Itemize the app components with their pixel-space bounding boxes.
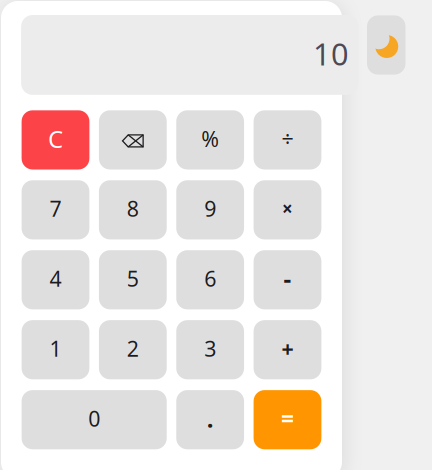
staticText: 2 (127, 334, 139, 363)
staticText: × (282, 196, 293, 221)
button[interactable]: 8 (99, 180, 167, 239)
button[interactable]: 1 (22, 320, 89, 379)
button[interactable]: . (176, 390, 244, 449)
button[interactable]: 2 (99, 320, 167, 379)
button[interactable]: ÷ (254, 110, 321, 169)
staticText: = (281, 403, 294, 433)
staticText: 0 (88, 404, 100, 432)
staticText: ÷ (281, 124, 293, 153)
button[interactable]: 5 (99, 250, 167, 309)
button[interactable]: 6 (176, 250, 244, 309)
staticText: + (281, 334, 293, 363)
staticText: 10 (313, 33, 349, 74)
staticText: 3 (204, 334, 216, 363)
staticText: 7 (49, 194, 61, 223)
staticText: 1 (49, 334, 61, 363)
button[interactable]: % (176, 110, 244, 169)
button[interactable]: 4 (22, 250, 89, 309)
staticText: 4 (49, 264, 61, 293)
staticText: 9 (204, 194, 216, 223)
button[interactable]: 3 (176, 320, 244, 379)
staticText: 5 (127, 264, 139, 293)
button[interactable]: = (254, 390, 321, 449)
staticText: C (48, 123, 63, 155)
staticText: - (283, 263, 291, 294)
button[interactable]: × (254, 180, 321, 239)
button[interactable]: 7 (22, 180, 89, 239)
staticText: % (201, 124, 219, 153)
button[interactable]: C (22, 110, 89, 169)
button[interactable]: 9 (176, 180, 244, 239)
staticText: 6 (204, 264, 216, 293)
button[interactable]: Toggle dark mode (367, 15, 405, 75)
button[interactable]: - (254, 250, 321, 309)
button[interactable]: 0 (22, 390, 167, 449)
button[interactable]: Backspace (99, 110, 167, 169)
staticText: . (207, 402, 214, 434)
staticText: 8 (127, 194, 139, 223)
button[interactable]: + (254, 320, 321, 379)
